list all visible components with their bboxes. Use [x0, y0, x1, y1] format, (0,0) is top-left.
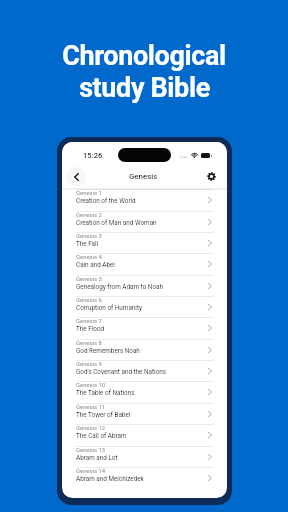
staticText: Genesis: [129, 172, 158, 181]
staticText: Genesis 12: [76, 425, 106, 432]
staticText: The Fall: [76, 240, 99, 247]
button[interactable]: Genesis 11: [62, 403, 227, 424]
staticText: 15:26: [83, 151, 103, 160]
staticText: The Table of Nations: [76, 389, 135, 396]
staticText: Abram and Melchizedek: [76, 475, 144, 482]
staticText: Genesis 4: [76, 254, 102, 261]
staticText: Genesis 9: [76, 361, 102, 368]
button[interactable]: Genesis 14: [62, 467, 227, 488]
staticText: Genesis 6: [76, 297, 102, 304]
staticText: Genesis 1: [76, 190, 102, 197]
staticText: Genesis 13: [76, 447, 106, 454]
staticText: Genesis 2: [76, 212, 102, 219]
staticText: Genealogy from Adam to Noah: [76, 283, 163, 290]
button[interactable]: Genesis 8: [62, 339, 227, 360]
staticText: Cain and Abel: [76, 261, 115, 268]
button[interactable]: Genesis 5: [62, 275, 227, 296]
button[interactable]: Genesis 3: [62, 232, 227, 253]
staticText: Genesis 8: [76, 340, 102, 347]
staticText: The Call of Abram: [76, 432, 127, 439]
button[interactable]: Settings: [201, 166, 221, 186]
staticText: Genesis 11: [76, 404, 106, 411]
staticText: Creation of the World: [76, 197, 136, 204]
staticText: Genesis 3: [76, 233, 102, 240]
staticText: Creation of Man and Woman: [76, 219, 157, 226]
button[interactable]: Genesis 13: [62, 446, 227, 467]
staticText: Corruption of Humanity: [76, 304, 142, 311]
button[interactable]: Genesis 6: [62, 296, 227, 317]
button[interactable]: Genesis 7: [62, 317, 227, 338]
staticText: Genesis 7: [76, 318, 102, 325]
staticText: The Tower of Babel: [76, 411, 131, 418]
button[interactable]: Genesis 1: [62, 189, 227, 210]
button[interactable]: Genesis 10: [62, 381, 227, 402]
button[interactable]: Genesis 4: [62, 253, 227, 274]
staticText: The Flood: [76, 325, 105, 332]
staticText: Chronological: [62, 40, 226, 72]
staticText: God's Covenant and the Nations: [76, 368, 167, 375]
button[interactable]: Back: [66, 167, 86, 187]
button[interactable]: Genesis 2: [62, 211, 227, 232]
staticText: Genesis 5: [76, 276, 102, 283]
staticText: study Bible: [79, 72, 210, 104]
button[interactable]: Genesis 12: [62, 424, 227, 445]
staticText: Genesis 14: [76, 468, 106, 475]
staticText: God Remembers Noah: [76, 347, 140, 354]
staticText: Genesis 10: [76, 382, 106, 389]
staticText: Abram and Lot: [76, 454, 118, 461]
button[interactable]: Genesis 9: [62, 360, 227, 381]
